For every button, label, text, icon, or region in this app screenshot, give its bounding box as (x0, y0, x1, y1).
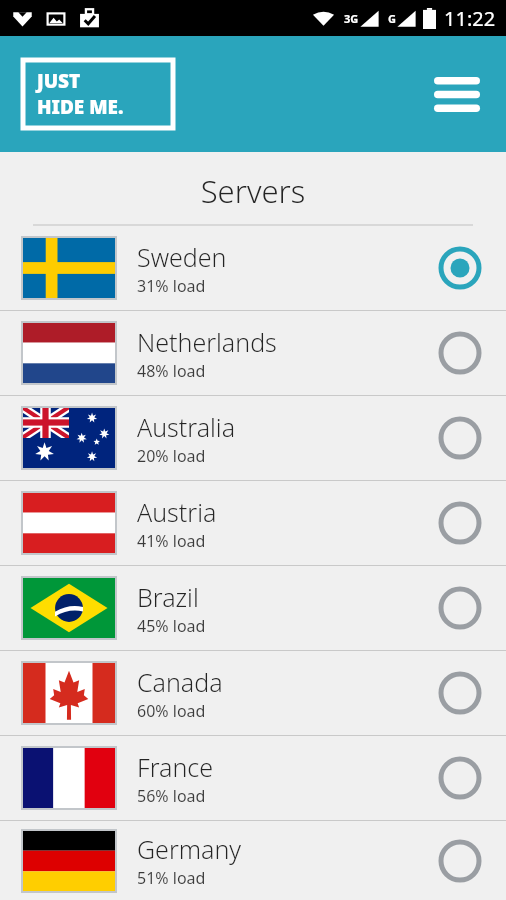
button[interactable]: Select Australia (426, 404, 494, 472)
button[interactable]: Select Netherlands (426, 319, 494, 387)
button[interactable]: Select Austria (426, 489, 494, 557)
staticText: France (137, 750, 213, 784)
button[interactable]: Australia (0, 396, 506, 480)
staticText: Australia (137, 410, 236, 444)
staticText: HIDE ME. (37, 94, 124, 120)
staticText: 41% load (137, 530, 206, 552)
button[interactable]: Germany (0, 821, 506, 900)
staticText: Germany (137, 832, 242, 866)
button[interactable]: France (0, 736, 506, 820)
staticText: 11:22 (444, 5, 496, 32)
button[interactable]: Select Germany (426, 827, 494, 895)
button[interactable]: Sweden (0, 226, 506, 310)
staticText: Servers (0, 170, 506, 212)
staticText: Sweden (137, 240, 227, 274)
staticText: Austria (137, 495, 217, 529)
staticText: 51% load (137, 867, 206, 889)
button[interactable]: Select Sweden (426, 234, 494, 302)
staticText: 31% load (137, 275, 206, 297)
staticText: 48% load (137, 360, 206, 382)
button[interactable]: Select France (426, 744, 494, 812)
button[interactable]: Canada (0, 651, 506, 735)
staticText: G (388, 11, 396, 26)
button[interactable]: Select Canada (426, 659, 494, 727)
staticText: Canada (137, 665, 223, 699)
staticText: 20% load (137, 445, 206, 467)
staticText: 3G (344, 11, 359, 26)
staticText: Netherlands (137, 325, 277, 359)
button[interactable]: Netherlands (0, 311, 506, 395)
button[interactable]: Menu (426, 63, 488, 125)
button[interactable]: Select Brazil (426, 574, 494, 642)
staticText: 56% load (137, 785, 206, 807)
staticText: JUST (37, 68, 81, 94)
button[interactable]: Brazil (0, 566, 506, 650)
button[interactable]: Austria (0, 481, 506, 565)
staticText: Brazil (137, 580, 199, 614)
button[interactable]: Just Hide Me logo (23, 60, 173, 128)
staticText: 45% load (137, 615, 206, 637)
staticText: 60% load (137, 700, 206, 722)
